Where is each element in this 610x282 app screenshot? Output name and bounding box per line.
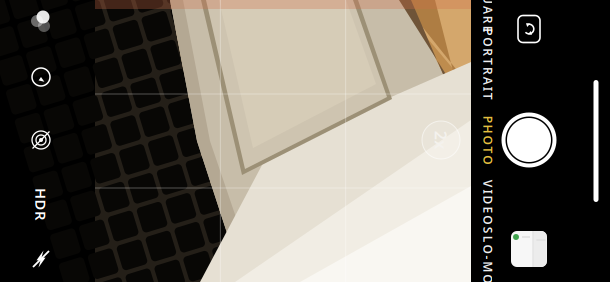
- staticText: V: [466, 194, 474, 210]
- button[interactable]: HDR: [19, 182, 63, 226]
- staticText: L: [469, 247, 476, 263]
- staticText: U: [479, 0, 488, 12]
- staticText: 2: [432, 129, 441, 151]
- button[interactable]: S: [460, 242, 516, 268]
- staticText: D: [481, 194, 490, 210]
- staticText: O: [507, 247, 516, 263]
- staticText: -: [488, 247, 492, 263]
- button[interactable]: Zoom 2x: [421, 120, 461, 160]
- button[interactable]: Photo library: [511, 231, 547, 267]
- staticText: O: [478, 247, 487, 263]
- button[interactable]: Filters: [19, 0, 63, 42]
- staticText: Q: [468, 0, 477, 12]
- staticText: O: [503, 132, 512, 148]
- button[interactable]: Live Photo: [19, 118, 63, 162]
- staticText: H: [25, 194, 36, 214]
- staticText: S: [459, 0, 466, 12]
- button[interactable]: Take photo: [501, 112, 557, 168]
- button[interactable]: P: [452, 51, 524, 77]
- staticText: x: [441, 129, 450, 151]
- staticText: P: [452, 56, 459, 72]
- button[interactable]: Flash off: [19, 237, 63, 281]
- staticText: O: [483, 132, 492, 148]
- staticText: O: [461, 56, 470, 72]
- staticText: T: [482, 56, 489, 72]
- staticText: R: [48, 194, 57, 214]
- staticText: A: [490, 0, 498, 12]
- staticText: R: [491, 56, 499, 72]
- staticText: E: [492, 194, 499, 210]
- button[interactable]: Timer: [19, 55, 63, 99]
- button[interactable]: Switch camera: [507, 7, 551, 51]
- button[interactable]: V: [466, 189, 510, 215]
- button[interactable]: S: [459, 0, 517, 17]
- staticText: D: [36, 194, 47, 214]
- button[interactable]: P: [464, 127, 512, 153]
